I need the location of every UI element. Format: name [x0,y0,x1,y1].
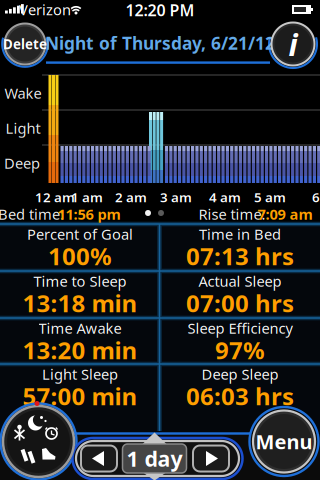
staticText: 97% [215,334,265,366]
button[interactable]: Menu [253,410,315,472]
staticText: 12 am [35,188,75,206]
button[interactable]: Info [271,22,314,65]
staticText: 57:00 min [22,380,137,412]
staticText: 1 am [71,188,103,206]
staticText: 13:20 min [22,334,137,366]
staticText: Night of Thursday, 6/21/12 [45,31,275,54]
staticText: 5 am [254,188,286,206]
staticText: Time Awake [38,318,121,338]
button[interactable]: Interval: 1 day [122,444,186,473]
button[interactable]: Delete [4,23,45,64]
staticText: Light Sleep [42,364,118,384]
staticText: 100% [48,240,112,272]
staticText: 7:09 am [257,204,312,224]
staticText: 3 am [160,188,192,206]
button[interactable]: Previous day [81,445,117,471]
staticText: 11:56 pm [57,204,120,224]
staticText: Menu [255,428,312,455]
staticText: Rise time: [198,204,265,224]
staticText: Deep Sleep [201,364,278,384]
button[interactable]: Next day [193,445,229,471]
staticText: 07:00 hrs [186,287,294,319]
staticText: Time in Bed [199,224,281,244]
staticText: i [288,24,297,64]
staticText: Light [5,118,40,138]
button[interactable]: Activity dial [3,406,74,477]
staticText: Deep [4,153,40,173]
staticText: Actual Sleep [198,271,281,291]
staticText: 07:13 hrs [186,240,294,272]
staticText: 4 am [209,188,241,206]
staticText: 06:03 hrs [186,380,294,412]
staticText: Sleep Efficiency [187,318,292,338]
staticText: 2 am [115,188,147,206]
staticText: Time to Sleep [33,271,126,291]
staticText: 13:18 min [22,287,137,319]
staticText: Bed time: [0,204,64,224]
staticText: Delete [3,35,47,53]
staticText: Percent of Goal [27,224,133,244]
staticText: 12:20 PM [125,0,194,21]
staticText: Wake [4,83,41,103]
staticText: 1 day [126,444,182,473]
staticText: 6 [312,188,320,206]
staticText: Verizon [19,0,71,19]
